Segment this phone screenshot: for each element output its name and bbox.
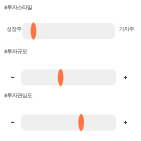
button[interactable]: Slider xyxy=(0,0,95,17)
staticText: 성장주 xyxy=(6,26,21,32)
staticText: 가치주 xyxy=(119,26,134,32)
staticText: #투자규모 xyxy=(4,48,27,55)
button[interactable]: Slider xyxy=(0,0,93,17)
button[interactable]: Decrease xyxy=(11,122,14,123)
button[interactable]: Decrease xyxy=(11,77,14,78)
button[interactable]: Increase xyxy=(123,75,127,79)
button[interactable]: Increase xyxy=(123,120,127,124)
staticText: #투자스타일 xyxy=(4,4,32,11)
staticText: #투자관심도 xyxy=(4,92,32,99)
button[interactable]: Slider xyxy=(0,0,95,17)
